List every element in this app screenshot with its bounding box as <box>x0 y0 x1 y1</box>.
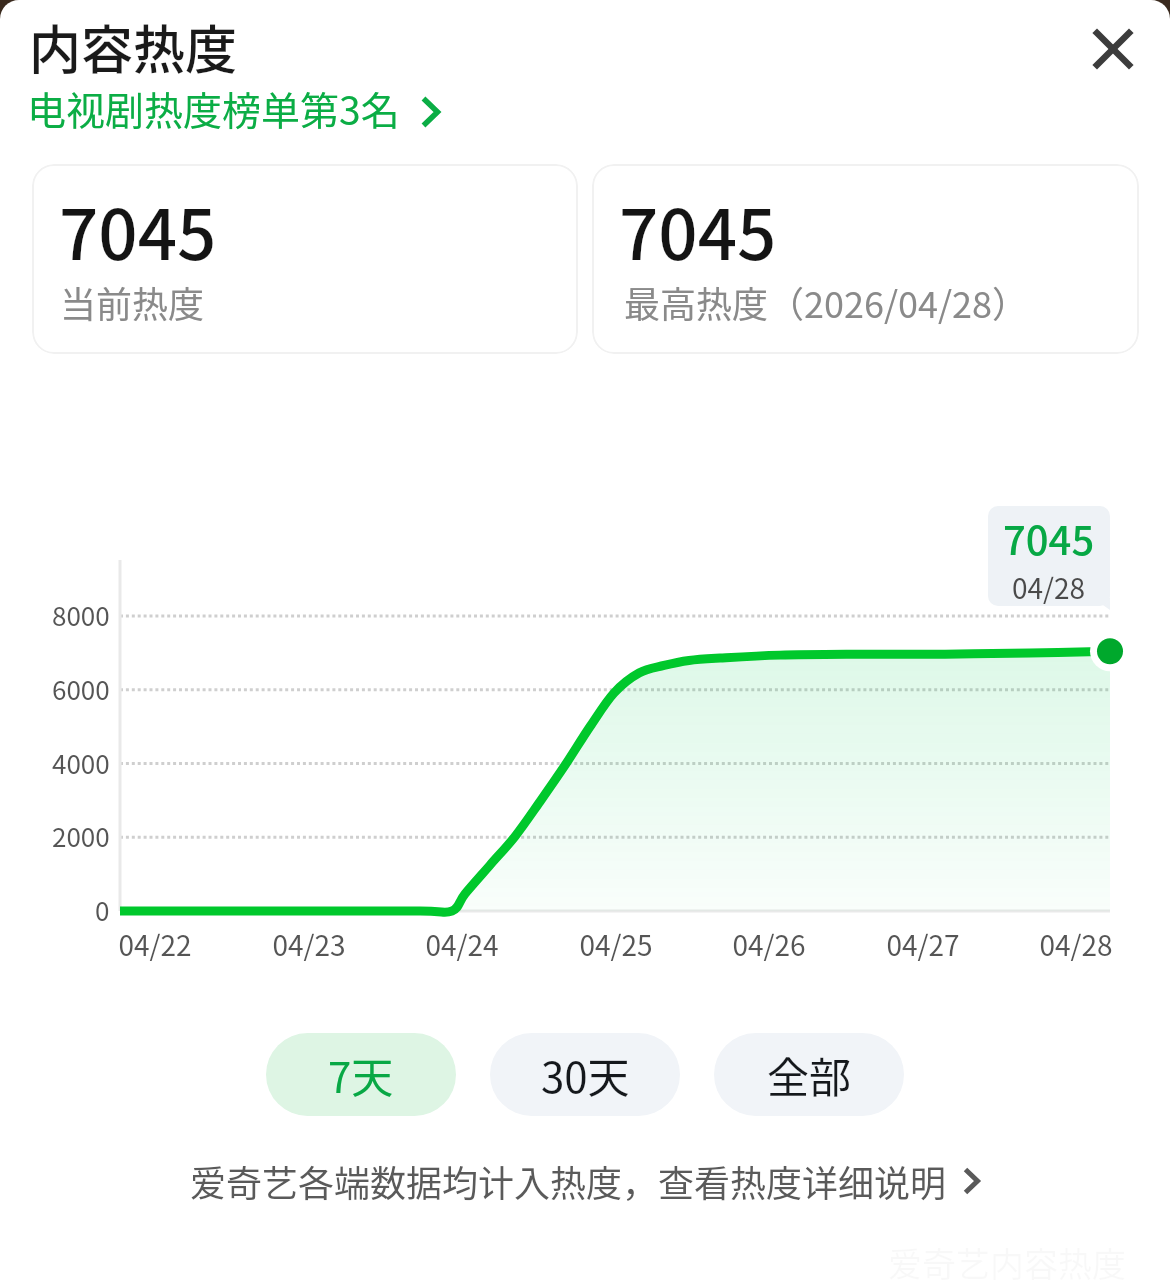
button[interactable]: 电视剧热度榜单第3名 <box>27 80 440 136</box>
staticText: 0 <box>95 891 110 929</box>
staticText: 04/22 <box>118 924 192 965</box>
button[interactable]: 7天 <box>266 1033 456 1116</box>
staticText: 2000 <box>52 817 110 855</box>
staticText: 8000 <box>52 596 110 634</box>
button[interactable]: 爱奇艺各端数据均计入热度，查看热度详细说明 <box>0 1155 1170 1207</box>
staticText: 04/26 <box>732 924 806 965</box>
staticText: 7045 <box>59 180 217 280</box>
button[interactable]: 7045 <box>592 164 1139 354</box>
staticText: 最高热度（2026/04/28） <box>624 276 1029 328</box>
staticText: 30天 <box>541 1044 630 1105</box>
button[interactable]: 全部 <box>714 1033 904 1116</box>
staticText: 04/25 <box>579 924 653 965</box>
staticText: 7天 <box>328 1044 394 1105</box>
staticText: 6000 <box>52 670 110 708</box>
button[interactable]: Close <box>1068 4 1158 94</box>
staticText: 4000 <box>52 744 110 782</box>
staticText: 电视剧热度榜单第3名 <box>27 80 400 136</box>
staticText: 04/28 <box>1039 924 1113 965</box>
button[interactable]: 30天 <box>490 1033 680 1116</box>
staticText: 04/23 <box>272 924 346 965</box>
staticText: 04/27 <box>886 924 960 965</box>
button[interactable]: 7045 <box>32 164 578 354</box>
staticText: 全部 <box>767 1044 852 1105</box>
staticText: 7045 <box>619 180 777 280</box>
staticText: 7045 <box>1003 509 1095 567</box>
staticText: 内容热度 <box>29 9 238 84</box>
staticText: 爱奇艺各端数据均计入热度，查看热度详细说明 <box>190 1155 947 1207</box>
staticText: 04/24 <box>425 924 499 965</box>
staticText: 04/28 <box>1012 567 1086 606</box>
staticText: 当前热度 <box>60 276 205 328</box>
